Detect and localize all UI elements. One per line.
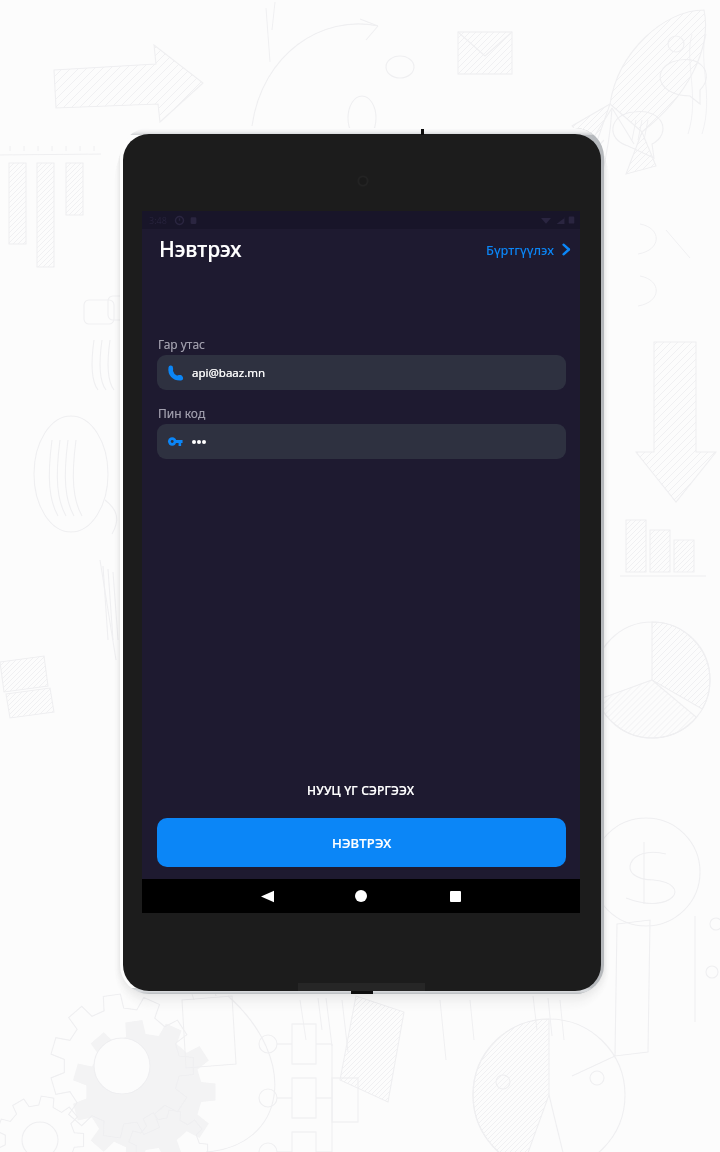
staticText: 3:48 [149,214,167,226]
staticText: Бүртгүүлэх [486,241,554,258]
button[interactable]: api@baaz.mn [157,355,566,390]
staticText: НЭВТРЭХ [332,834,392,852]
staticText: api@baaz.mn [192,365,266,381]
staticText: Нэвтрэх [159,235,242,264]
staticText: Гар утас [158,336,205,352]
button[interactable] [157,424,566,459]
button[interactable]: Recent apps [433,879,477,913]
button[interactable]: НУУЦ ҮГ СЭРГЭЭХ [142,777,580,803]
staticText: НУУЦ ҮГ СЭРГЭЭХ [307,782,415,798]
staticText: Пин код [158,405,206,421]
button[interactable]: Бүртгүүлэх [486,241,574,258]
button[interactable]: Home [339,879,383,913]
button[interactable]: Back [245,879,289,913]
button[interactable]: НЭВТРЭХ [157,818,566,867]
